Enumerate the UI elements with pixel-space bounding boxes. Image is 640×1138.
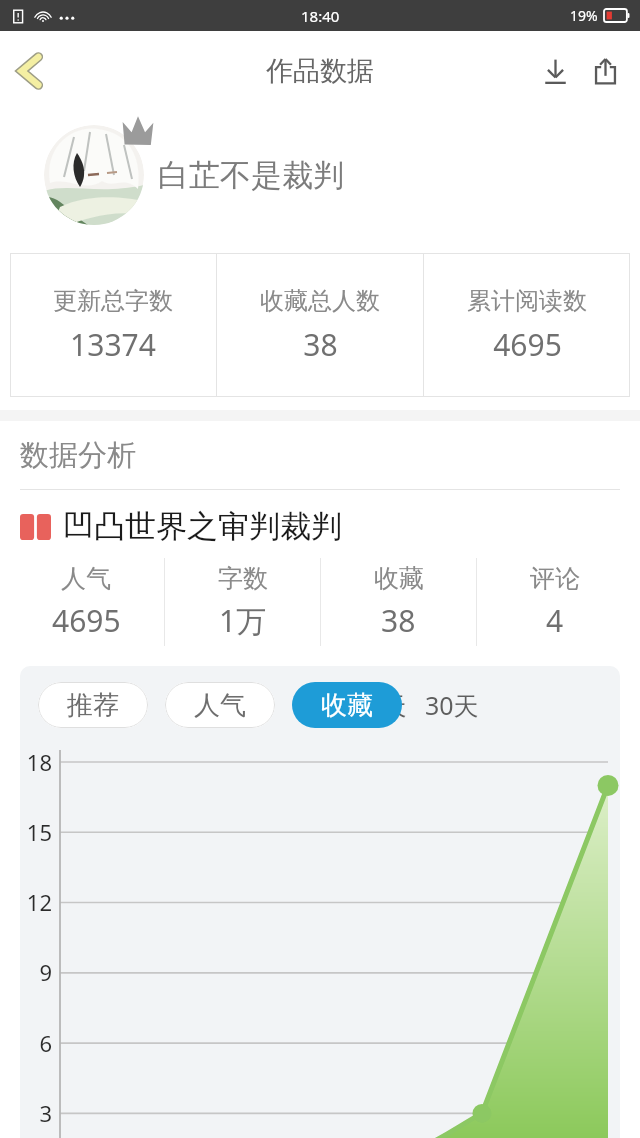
- button[interactable]: 评论: [477, 552, 632, 652]
- staticText: 38: [303, 324, 338, 365]
- staticText: 4: [546, 600, 564, 641]
- staticText: 白芷不是裁判: [158, 156, 344, 195]
- staticText: 30天: [425, 688, 479, 722]
- button[interactable]: 人气: [8, 552, 164, 652]
- button[interactable]: 14天: [350, 688, 410, 722]
- staticText: 评论: [530, 563, 580, 594]
- button[interactable]: Back: [0, 41, 60, 101]
- staticText: 7天: [295, 688, 335, 722]
- staticText: 6: [39, 1028, 52, 1058]
- staticText: 3: [39, 1098, 52, 1128]
- button[interactable]: 收藏: [292, 682, 402, 728]
- staticText: 累计阅读数: [467, 286, 587, 316]
- staticText: 字数: [218, 563, 268, 594]
- staticText: 收藏总人数: [260, 286, 380, 316]
- staticText: 12: [26, 887, 52, 917]
- staticText: 9: [39, 957, 52, 987]
- button[interactable]: 字数: [165, 552, 320, 652]
- staticText: 人气: [194, 689, 246, 722]
- staticText: 收藏: [321, 689, 373, 722]
- button[interactable]: 推荐: [38, 682, 148, 728]
- button[interactable]: 收藏: [321, 552, 476, 652]
- staticText: 13374: [70, 324, 156, 365]
- button[interactable]: 累计阅读数: [424, 253, 630, 397]
- staticText: 38: [381, 600, 416, 641]
- button[interactable]: 收藏总人数: [217, 253, 423, 397]
- button[interactable]: 凹凸世界之审判裁判: [20, 507, 640, 546]
- staticText: 凹凸世界之审判裁判: [63, 507, 342, 546]
- button[interactable]: 人气: [165, 682, 275, 728]
- staticText: 4695: [493, 324, 562, 365]
- staticText: 1万: [219, 600, 267, 641]
- staticText: 18: [26, 747, 52, 777]
- staticText: 18:40: [301, 6, 340, 26]
- staticText: 15: [26, 817, 52, 847]
- button[interactable]: 7天: [292, 688, 338, 722]
- staticText: 推荐: [67, 689, 119, 722]
- staticText: 数据分析: [20, 437, 136, 474]
- staticText: 人气: [61, 563, 111, 594]
- button[interactable]: Share: [580, 46, 630, 96]
- staticText: 4695: [52, 600, 121, 641]
- button[interactable]: 30天: [422, 688, 482, 722]
- button[interactable]: 白芷不是裁判: [0, 111, 640, 239]
- staticText: 收藏: [374, 563, 424, 594]
- staticText: 19%: [570, 6, 598, 25]
- staticText: 作品数据: [266, 54, 374, 88]
- staticText: 14天: [353, 688, 407, 722]
- button[interactable]: 更新总字数: [10, 253, 216, 397]
- staticText: 更新总字数: [53, 286, 173, 316]
- button[interactable]: Download: [530, 46, 580, 96]
